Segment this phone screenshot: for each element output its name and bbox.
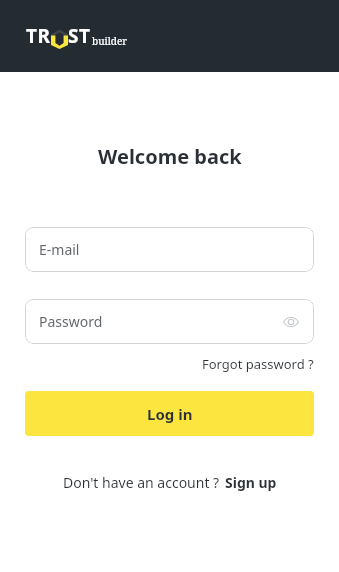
button[interactable]: Password [25,299,314,344]
staticText: TR [26,23,51,49]
button[interactable]: TRUSTbuilder logo [26,23,127,49]
button[interactable]: Forgot password ? [202,355,314,373]
button[interactable]: Log in [25,391,314,436]
staticText: Don't have an account ? [63,473,220,492]
staticText: ST [68,23,91,49]
staticText: E-mail [39,240,80,259]
staticText: builder [92,34,127,48]
button[interactable]: Show password [277,308,305,336]
button[interactable]: Sign up [225,473,277,492]
staticText: Welcome back [98,143,242,170]
staticText: Log in [147,404,193,424]
staticText: Password [39,312,103,331]
button[interactable]: E-mail [25,227,314,272]
